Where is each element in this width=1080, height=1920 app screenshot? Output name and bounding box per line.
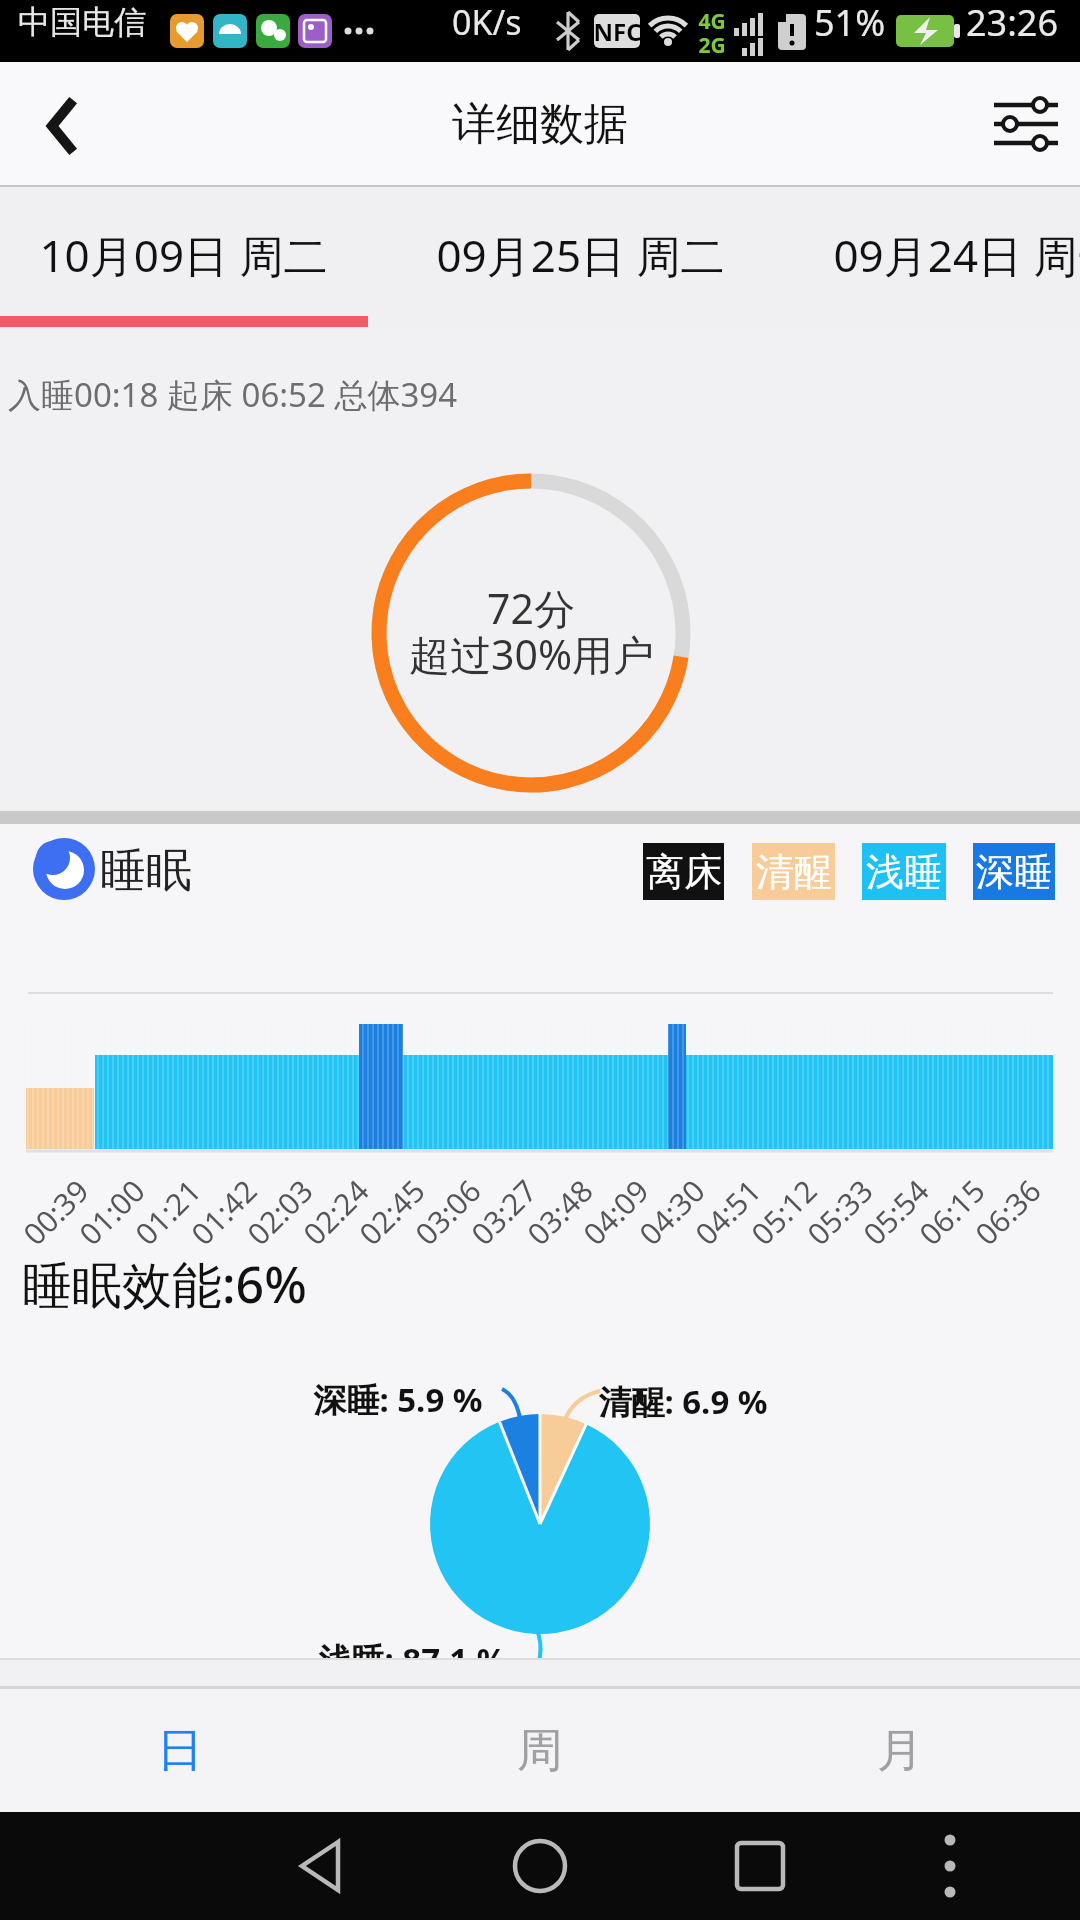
staticText: 周 <box>517 1722 563 1780</box>
staticText: 0K/s <box>452 0 522 45</box>
button[interactable] <box>794 187 1080 330</box>
button[interactable]: 周 <box>360 1689 720 1812</box>
staticText: 04:09 <box>574 1170 657 1253</box>
staticText: 浅睡: 87.1 % <box>318 1637 507 1682</box>
staticText: 09月25日 周二 <box>436 225 725 285</box>
button[interactable]: 清醒 <box>752 843 835 900</box>
button[interactable] <box>0 187 368 330</box>
button[interactable] <box>910 1816 990 1916</box>
button[interactable]: 深睡 <box>973 843 1055 900</box>
staticText: 03:48 <box>518 1170 601 1253</box>
staticText: 浅睡 <box>866 848 942 896</box>
staticText: 超过30%用户 <box>409 626 654 682</box>
button[interactable] <box>490 1816 590 1916</box>
staticText: 23:26 <box>966 0 1059 47</box>
staticText: 10月09日 周二 <box>39 225 328 285</box>
staticText: 详细数据 <box>452 97 628 152</box>
staticText: 09月24日 周一 <box>833 225 1080 285</box>
staticText: 01:42 <box>182 1170 265 1253</box>
staticText: 深睡: 5.9 % <box>313 1377 483 1422</box>
staticText: 清醒: 6.9 % <box>598 1379 768 1424</box>
staticText: 05:12 <box>742 1170 825 1253</box>
button[interactable]: 日 <box>0 1689 360 1812</box>
button[interactable] <box>20 92 90 162</box>
button[interactable] <box>710 1816 810 1916</box>
staticText: 03:06 <box>406 1170 489 1253</box>
staticText: 深睡 <box>976 848 1052 896</box>
button[interactable] <box>397 187 765 330</box>
staticText: 04:51 <box>686 1170 769 1253</box>
staticText: 离床 <box>646 848 722 896</box>
staticText: 01:00 <box>70 1170 153 1253</box>
staticText: 入睡00:18 起床 06:52 总体394 <box>8 372 458 417</box>
button[interactable]: 浅睡 <box>862 843 946 900</box>
staticText: 06:36 <box>966 1170 1049 1253</box>
staticText: 月 <box>877 1722 923 1780</box>
staticText: 2G <box>698 31 726 57</box>
staticText: 02:03 <box>238 1170 321 1253</box>
staticText: 05:54 <box>854 1170 937 1253</box>
staticText: 03:27 <box>462 1170 545 1253</box>
staticText: 02:24 <box>294 1170 377 1253</box>
staticText: 01:21 <box>126 1170 209 1253</box>
staticText: NFC <box>593 15 642 48</box>
staticText: 05:33 <box>798 1170 881 1253</box>
staticText: 51% <box>814 0 886 47</box>
staticText: 04:30 <box>630 1170 713 1253</box>
staticText: 02:45 <box>350 1170 433 1253</box>
staticText: 清醒 <box>756 848 832 896</box>
staticText: 中国电信 <box>18 2 146 42</box>
staticText: 睡眠 <box>100 842 192 900</box>
staticText: 睡眠效能:6% <box>22 1250 307 1318</box>
button[interactable] <box>980 92 1070 162</box>
staticText: 06:15 <box>910 1170 993 1253</box>
button[interactable]: 离床 <box>643 843 724 900</box>
staticText: 72分 <box>487 580 575 636</box>
staticText: 日 <box>157 1722 203 1780</box>
staticText: 00:39 <box>14 1170 97 1253</box>
button[interactable]: 月 <box>720 1689 1080 1812</box>
button[interactable] <box>270 1816 370 1916</box>
staticText: 4G <box>698 7 726 33</box>
